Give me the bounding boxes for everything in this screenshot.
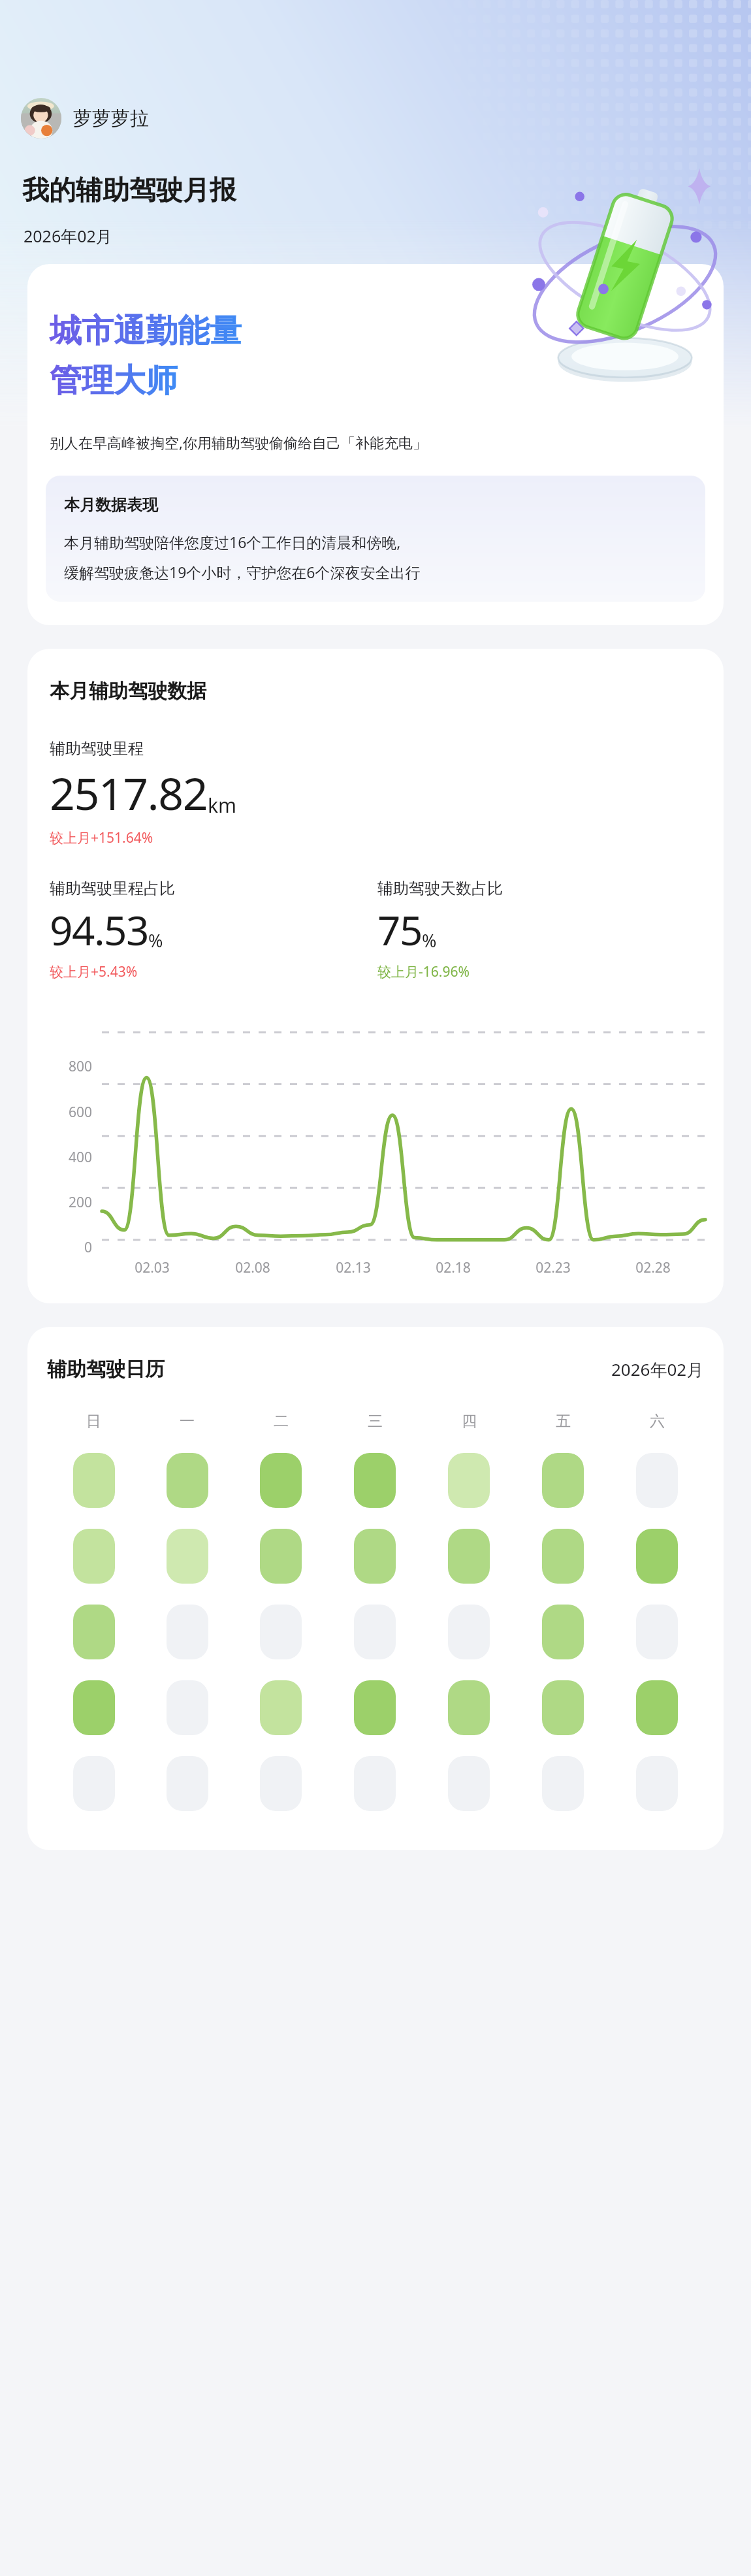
staticText: km [208,792,237,819]
button[interactable] [354,1529,396,1584]
staticText: 较上月-16.96% [377,962,470,981]
staticText: 本月辅助驾驶陪伴您度过16个工作日的清晨和傍晚, 缓解驾驶疲惫达19个小时，守护… [64,532,421,582]
button[interactable] [167,1605,208,1659]
staticText: 管理大师 [50,361,178,401]
staticText: 600 [69,1103,93,1122]
staticText: 75 [377,902,422,957]
staticText: 较上月+5.43% [50,962,138,981]
staticText: 02.13 [336,1258,371,1277]
staticText: 2517.82 [50,762,208,823]
staticText: 五 [556,1412,571,1431]
button[interactable]: 本月数据表现 [46,476,705,602]
button[interactable] [167,1453,208,1508]
staticText: 800 [69,1057,93,1076]
staticText: 三 [368,1412,383,1431]
staticText: 2026年02月 [24,225,112,247]
staticText: 辅助驾驶里程 [50,739,144,758]
staticText: 一 [180,1412,195,1431]
staticText: 别人在早高峰被掏空,你用辅助驾驶偷偷给自己「补能充电」 [50,432,427,452]
button[interactable] [636,1756,678,1811]
button[interactable]: 本月辅助驾驶数据 [27,649,724,1303]
button[interactable] [542,1453,584,1508]
button[interactable] [542,1605,584,1659]
button[interactable] [542,1680,584,1735]
staticText: 辅助驾驶天数占比 [377,879,503,898]
button[interactable] [448,1453,490,1508]
other: 能量电池插画 [517,167,733,393]
button[interactable] [354,1453,396,1508]
staticText: 日 [86,1412,101,1431]
button[interactable] [73,1453,115,1508]
button[interactable] [448,1756,490,1811]
staticText: 02.23 [535,1258,571,1277]
button[interactable] [354,1605,396,1659]
staticText: 2026年02月 [611,1358,704,1381]
staticText: 辅助驾驶日历 [47,1357,165,1382]
button[interactable] [354,1756,396,1811]
button[interactable] [260,1453,302,1508]
staticText: 本月辅助驾驶数据 [50,679,206,704]
button[interactable] [448,1680,490,1735]
staticText: 二 [274,1412,289,1431]
button[interactable] [354,1680,396,1735]
button[interactable] [260,1529,302,1584]
button[interactable] [636,1453,678,1508]
staticText: 城市通勤能量 [50,311,242,351]
staticText: 萝萝萝拉 [73,106,149,131]
staticText: 四 [462,1412,477,1431]
button[interactable] [636,1680,678,1735]
staticText: 02.08 [235,1258,270,1277]
button[interactable] [636,1529,678,1584]
button[interactable] [167,1756,208,1811]
button[interactable] [73,1756,115,1811]
staticText: 较上月+151.64% [50,828,153,847]
staticText: 六 [650,1412,665,1431]
button[interactable] [542,1529,584,1584]
button[interactable] [260,1605,302,1659]
staticText: 400 [69,1148,93,1167]
button[interactable] [73,1605,115,1659]
button[interactable] [167,1529,208,1584]
staticText: 02.03 [135,1258,170,1277]
staticText: 94.53 [50,902,148,957]
button[interactable] [73,1680,115,1735]
staticText: 02.18 [436,1258,471,1277]
button[interactable] [636,1605,678,1659]
staticText: 02.28 [635,1258,671,1277]
button[interactable] [73,1529,115,1584]
button[interactable] [542,1756,584,1811]
button[interactable] [260,1680,302,1735]
staticText: 我的辅助驾驶月报 [22,174,236,208]
button[interactable] [448,1529,490,1584]
staticText: % [422,928,437,953]
button[interactable] [167,1680,208,1735]
button[interactable]: 用户头像 [18,95,152,141]
staticText: 辅助驾驶里程占比 [50,879,175,898]
button[interactable]: 辅助驾驶日历 [27,1327,724,1850]
button[interactable]: 城市通勤能量 [27,264,724,625]
staticText: % [148,928,163,953]
button[interactable] [260,1756,302,1811]
staticText: 0 [84,1238,93,1257]
button[interactable] [448,1605,490,1659]
staticText: 本月数据表现 [64,495,158,515]
staticText: 200 [69,1193,93,1212]
other: 用户头像 [21,98,61,139]
